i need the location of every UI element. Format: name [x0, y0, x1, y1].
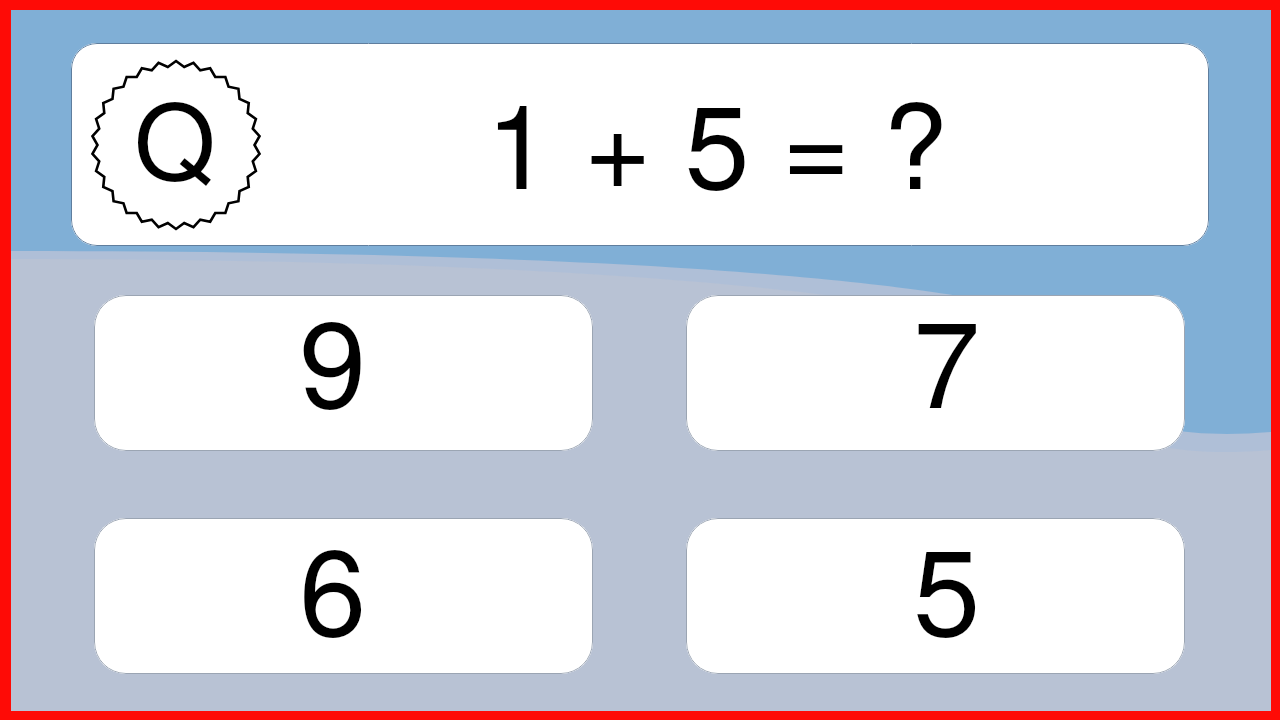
other: Question badge: [90, 59, 262, 231]
button[interactable]: 6: [94, 518, 593, 674]
button[interactable]: Question badge: [71, 43, 1209, 246]
button[interactable]: 9: [94, 295, 593, 451]
staticText: 5: [913, 518, 981, 653]
button[interactable]: 7: [686, 295, 1185, 451]
staticText: Q: [134, 59, 216, 209]
staticText: 7: [913, 295, 981, 425]
staticText: 6: [299, 518, 367, 653]
button[interactable]: 5: [686, 518, 1185, 674]
staticText: 9: [299, 295, 367, 425]
staticText: 1 + 5 = ?: [486, 55, 948, 223]
